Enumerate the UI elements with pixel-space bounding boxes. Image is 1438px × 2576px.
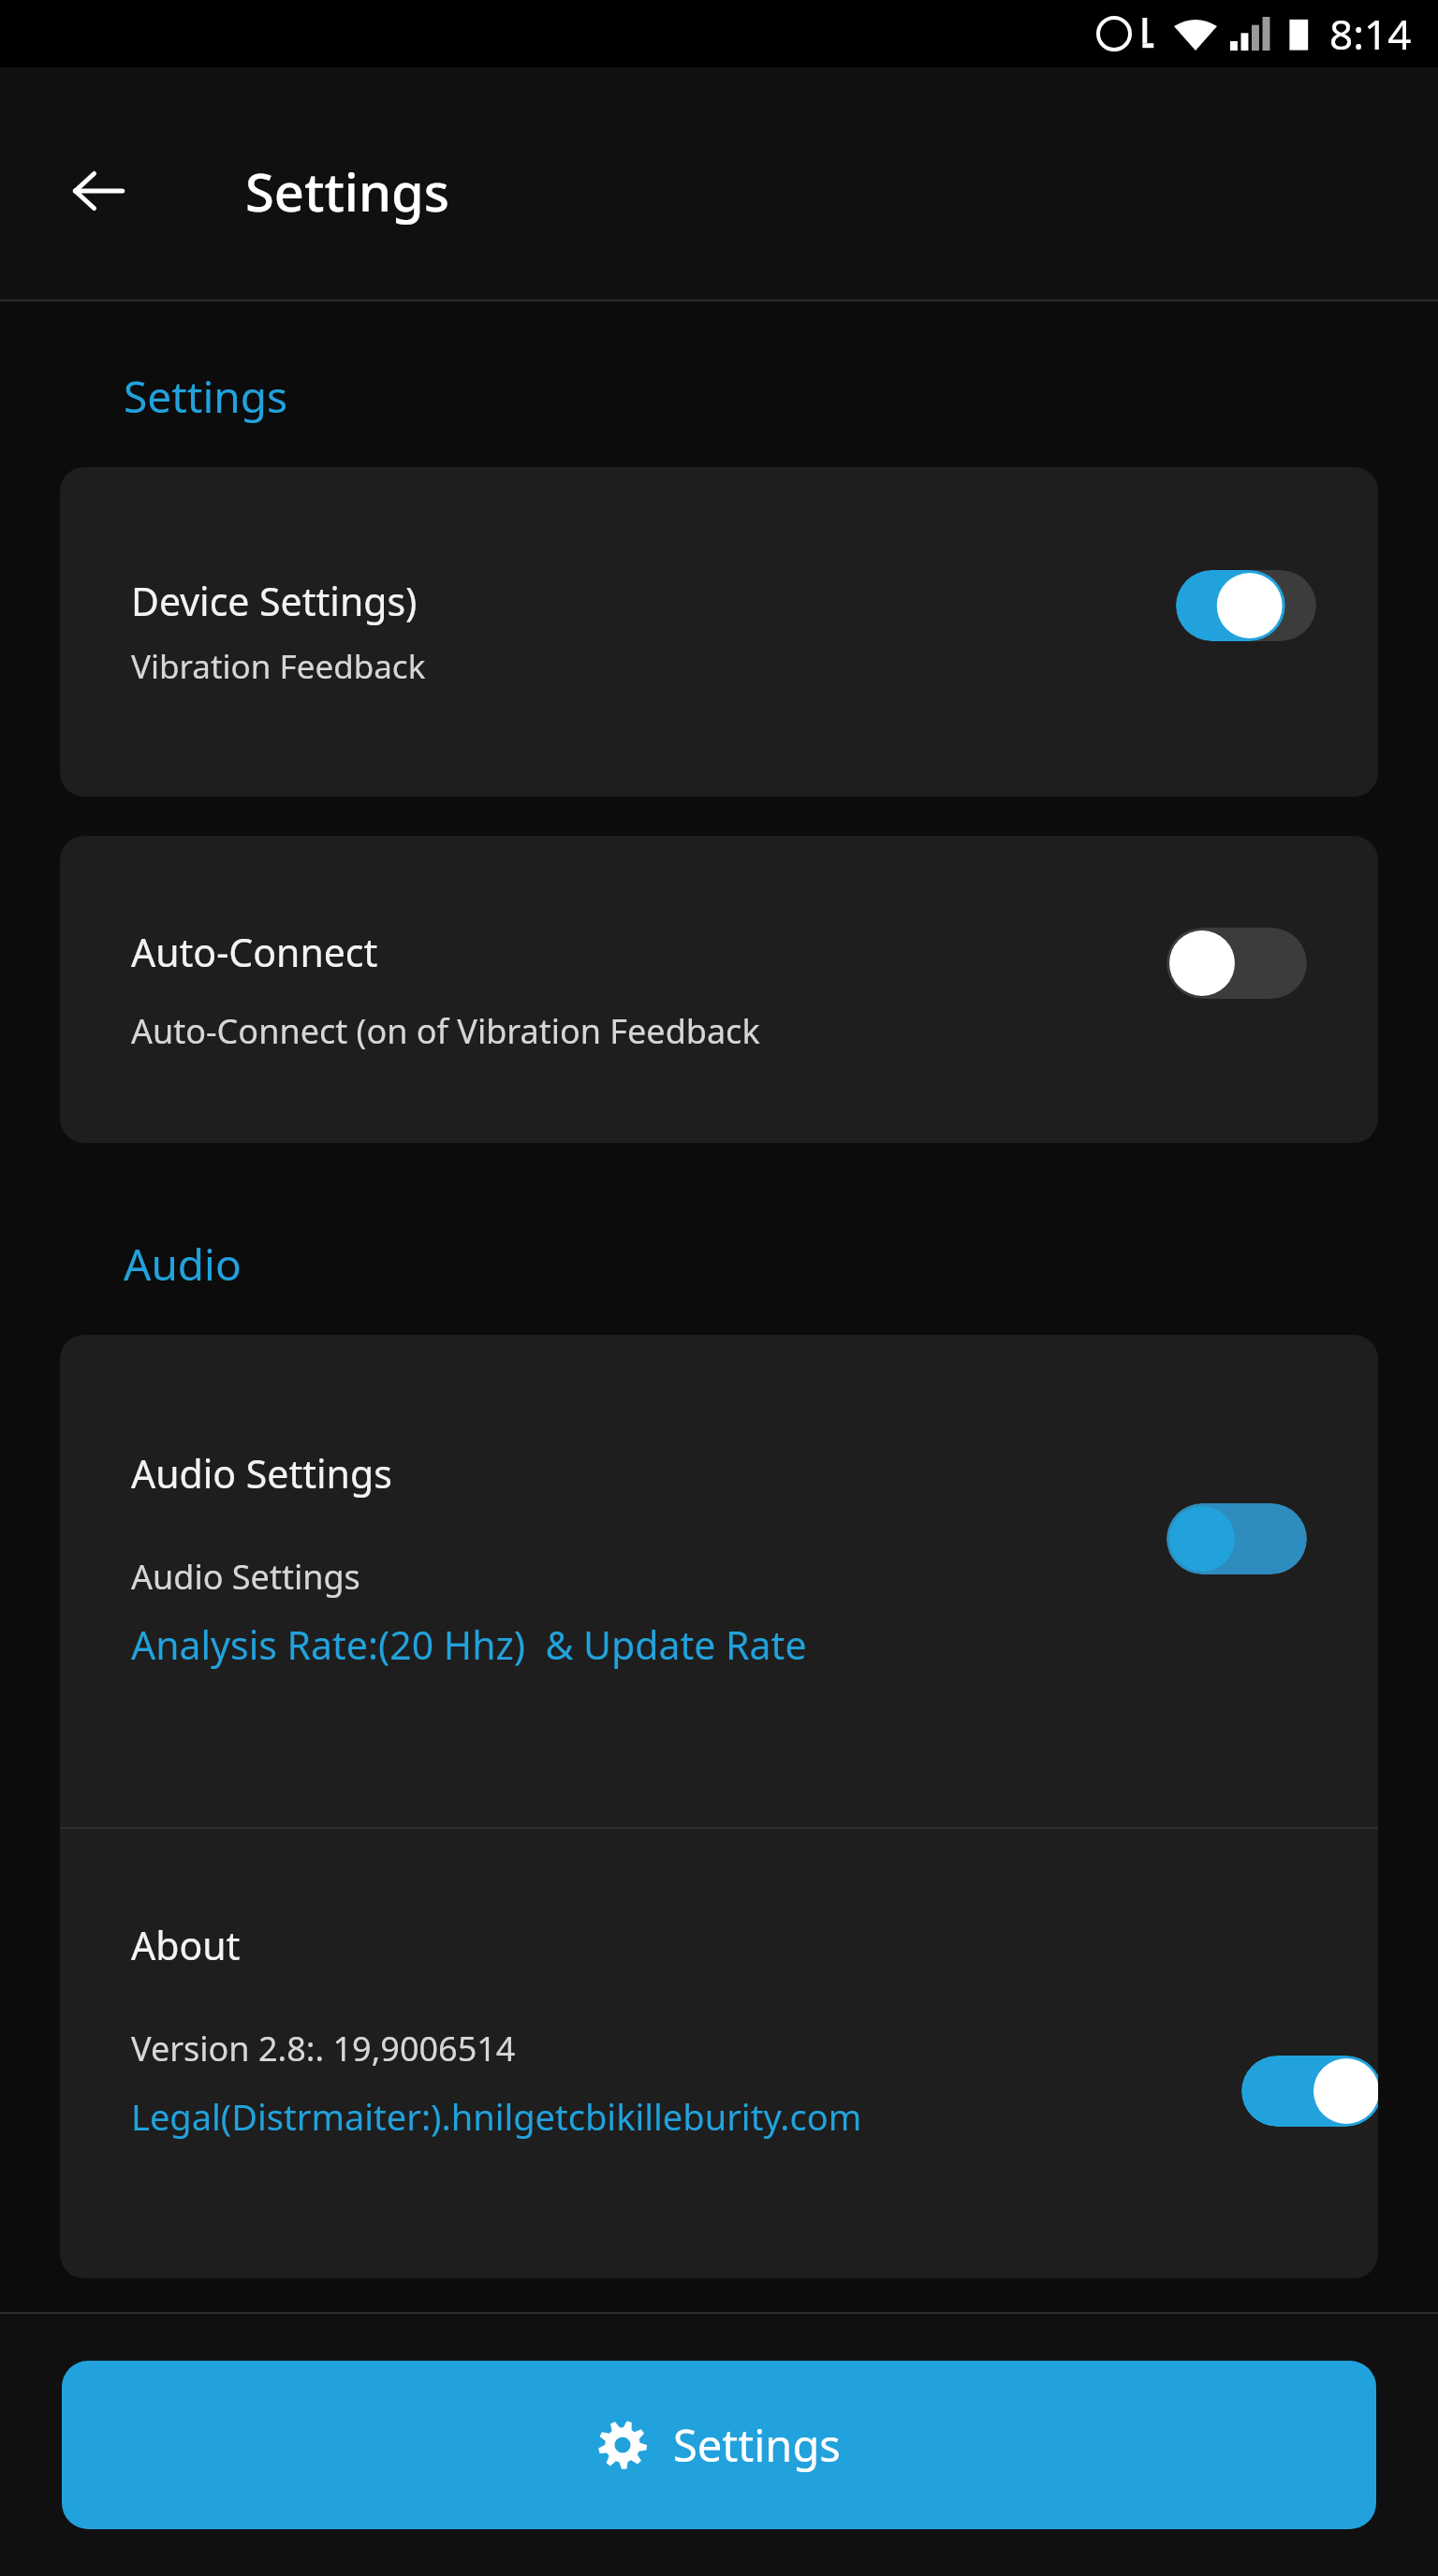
button[interactable]: About (60, 1829, 1378, 2278)
staticText: Auto-Connect (131, 926, 378, 978)
staticText: 8:14 (1329, 6, 1412, 62)
staticText: Vibration Feedback (131, 644, 426, 689)
button[interactable]: Toggle (1167, 928, 1307, 999)
button[interactable]: Settings (62, 2361, 1376, 2529)
staticText: Audio (124, 1235, 242, 1294)
button[interactable]: Back (58, 151, 139, 231)
button[interactable]: Device Settings) (60, 467, 1378, 797)
staticText: Auto-Connect (on of Vibration Feedback (131, 1008, 760, 1054)
staticText: Version 2.8:. 19,9006514 (131, 2026, 516, 2071)
staticText: Settings (124, 367, 288, 426)
button[interactable]: Toggle (1241, 2056, 1378, 2127)
staticText: Settings (245, 155, 450, 227)
staticText: Settings (673, 2415, 841, 2475)
staticText: Analysis Rate:(20 Hhz) & Update Rate (131, 1618, 807, 1671)
button[interactable]: Toggle (1176, 570, 1316, 641)
staticText: Legal(Distrmaiter:).hnilgetcbikilleburit… (131, 2092, 862, 2141)
button[interactable]: Toggle (1167, 1503, 1307, 1574)
staticText: Audio Settings (131, 1554, 360, 1600)
staticText: Audio Settings (131, 1447, 392, 1500)
staticText: Device Settings) (131, 575, 418, 627)
button[interactable]: Auto-Connect (60, 836, 1378, 1143)
button[interactable]: Audio Settings (60, 1335, 1378, 1827)
staticText: About (131, 1919, 241, 1971)
